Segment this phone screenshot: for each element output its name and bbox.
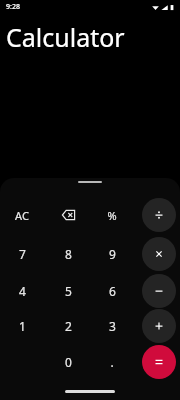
- staticText: 7: [19, 246, 26, 262]
- button[interactable]: AC: [3, 199, 41, 231]
- staticText: 6: [109, 283, 116, 299]
- button[interactable]: Divide: [142, 198, 176, 232]
- button[interactable]: 4: [3, 275, 41, 307]
- button[interactable]: 0: [49, 346, 87, 378]
- button[interactable]: Plus: [142, 309, 176, 343]
- button[interactable]: 2: [49, 310, 87, 342]
- button[interactable]: %: [93, 199, 131, 231]
- button[interactable]: .: [93, 346, 131, 378]
- button[interactable]: 7: [3, 238, 41, 270]
- button[interactable]: 1: [3, 310, 41, 342]
- staticText: 9: [109, 246, 116, 262]
- staticText: 8: [65, 246, 72, 262]
- staticText: %: [107, 208, 117, 223]
- button[interactable]: 8: [49, 238, 87, 270]
- button[interactable]: 9: [93, 238, 131, 270]
- staticText: 2: [65, 318, 72, 334]
- staticText: 5: [65, 283, 72, 299]
- button[interactable]: Equals: [142, 345, 176, 379]
- button[interactable]: 6: [93, 275, 131, 307]
- button[interactable]: Multiply: [142, 237, 176, 271]
- button[interactable]: 5: [49, 275, 87, 307]
- button[interactable]: Minus: [142, 274, 176, 308]
- staticText: .: [110, 354, 114, 370]
- staticText: 0: [65, 354, 72, 370]
- button[interactable]: 3: [93, 310, 131, 342]
- staticText: Calculator: [6, 20, 125, 54]
- staticText: 9:28: [6, 2, 20, 12]
- staticText: 3: [109, 318, 116, 334]
- staticText: 1: [19, 318, 26, 334]
- staticText: 4: [19, 283, 26, 299]
- button[interactable]: Backspace: [49, 199, 87, 231]
- staticText: AC: [15, 208, 29, 223]
